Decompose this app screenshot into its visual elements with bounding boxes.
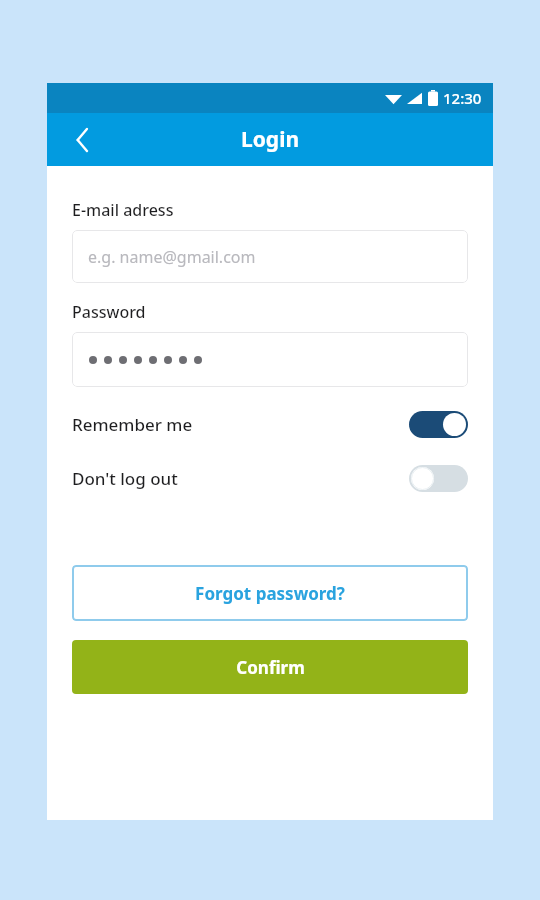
- staticText: 12:30: [443, 88, 482, 108]
- button[interactable]: Confirm: [72, 640, 468, 694]
- staticText: Confirm: [236, 656, 305, 679]
- staticText: Don't log out: [72, 467, 178, 490]
- button[interactable]: [72, 332, 468, 387]
- button[interactable]: Don't log out: [72, 463, 468, 493]
- other: Remember me: [409, 411, 468, 438]
- staticText: Forgot password?: [195, 582, 345, 605]
- button[interactable]: Back: [63, 120, 103, 160]
- staticText: Password: [72, 301, 146, 323]
- staticText: Login: [241, 125, 300, 154]
- button[interactable]: Remember me: [72, 409, 468, 439]
- other: Don't log out: [409, 465, 468, 492]
- staticText: E-mail adress: [72, 199, 174, 221]
- staticText: Remember me: [72, 413, 193, 436]
- staticText: e.g. name@gmail.com: [88, 246, 256, 268]
- button[interactable]: e.g. name@gmail.com: [72, 230, 468, 283]
- button[interactable]: Forgot password?: [72, 565, 468, 621]
